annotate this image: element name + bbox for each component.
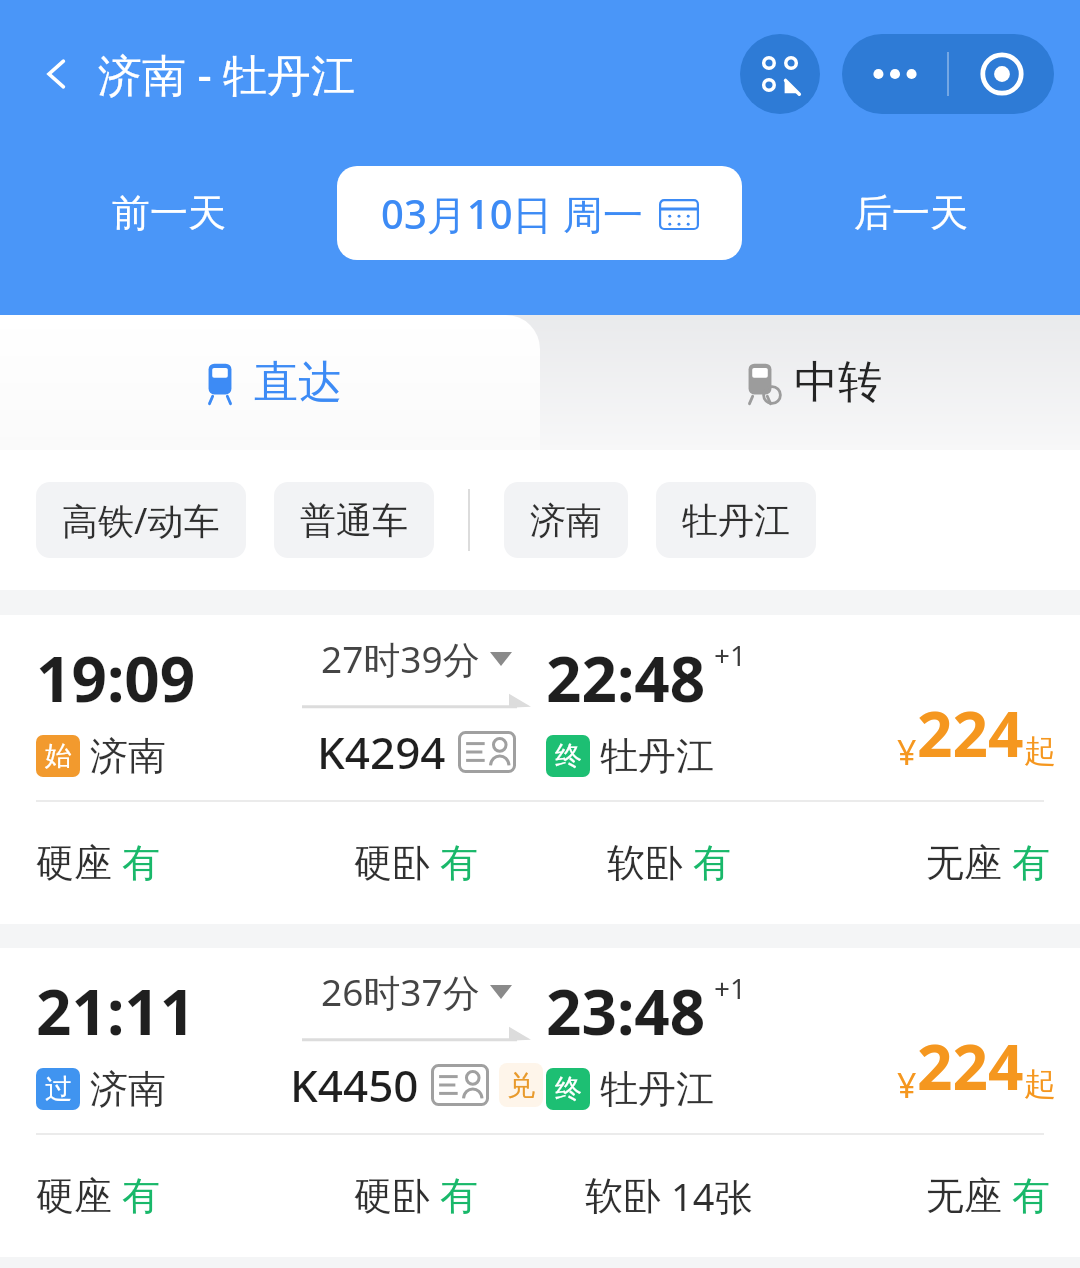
staticText: 前一天: [112, 189, 226, 237]
staticText: 牡丹江: [682, 498, 790, 543]
staticText: 硬座: [36, 1172, 112, 1220]
staticText: 无座: [926, 839, 1002, 887]
button[interactable]: 牡丹江: [656, 482, 816, 558]
staticText: 有: [1012, 839, 1050, 887]
button[interactable]: Target: [949, 34, 1054, 114]
staticText: 224: [917, 1024, 1024, 1108]
staticText: +1: [714, 636, 747, 674]
staticText: 始: [45, 739, 72, 773]
staticText: 牡丹江: [600, 1065, 714, 1113]
staticText: 终: [555, 739, 582, 773]
button[interactable]: 高铁/动车: [36, 482, 246, 558]
staticText: 软卧: [585, 1172, 661, 1220]
staticText: 济南: [90, 1065, 166, 1113]
button[interactable]: 后一天: [742, 148, 1080, 278]
staticText: 济南: [90, 732, 166, 780]
staticText: 有: [122, 839, 160, 887]
staticText: 有: [693, 839, 731, 887]
staticText: 有: [122, 1172, 160, 1220]
staticText: ¥: [897, 729, 917, 775]
staticText: 高铁/动车: [62, 496, 220, 545]
staticText: 普通车: [300, 498, 408, 543]
button[interactable]: Scan: [740, 34, 820, 114]
staticText: 27时39分: [321, 633, 480, 684]
staticText: 硬卧: [354, 839, 430, 887]
staticText: 过: [45, 1072, 72, 1106]
staticText: 硬卧: [354, 1172, 430, 1220]
button[interactable]: 03月10日 周一: [337, 166, 742, 260]
staticText: 济南: [530, 498, 602, 543]
staticText: 有: [440, 839, 478, 887]
staticText: 有: [1012, 1172, 1050, 1220]
staticText: 21:11: [36, 969, 196, 1053]
staticText: 有: [440, 1172, 478, 1220]
button[interactable]: 21:11: [0, 948, 1080, 1257]
button[interactable]: 普通车: [274, 482, 434, 558]
staticText: 无座: [926, 1172, 1002, 1220]
staticText: 23:48: [546, 969, 706, 1053]
staticText: 起: [1024, 731, 1056, 771]
staticText: 软卧: [607, 839, 683, 887]
button[interactable]: 19:09: [0, 615, 1080, 924]
staticText: 26时37分: [321, 966, 480, 1017]
staticText: 硬座: [36, 839, 112, 887]
button[interactable]: Back: [30, 47, 84, 101]
button[interactable]: 中转: [540, 315, 1080, 450]
staticText: 济南 - 牡丹江: [98, 44, 356, 104]
staticText: 22:48: [546, 636, 706, 720]
staticText: 19:09: [36, 636, 196, 720]
staticText: 起: [1024, 1064, 1056, 1104]
button[interactable]: More options: [842, 34, 947, 114]
staticText: K4450: [290, 1055, 419, 1115]
staticText: 直达: [254, 355, 342, 410]
button[interactable]: 直达: [0, 315, 540, 450]
button[interactable]: 济南: [504, 482, 628, 558]
staticText: 牡丹江: [600, 732, 714, 780]
staticText: K4294: [317, 722, 446, 782]
staticText: 兑: [507, 1068, 535, 1103]
staticText: +1: [714, 969, 747, 1007]
staticText: 后一天: [854, 189, 968, 237]
staticText: ¥: [897, 1062, 917, 1108]
button[interactable]: 前一天: [0, 148, 337, 278]
staticText: 224: [917, 691, 1024, 775]
staticText: 03月10日 周一: [381, 186, 643, 241]
staticText: 终: [555, 1072, 582, 1106]
staticText: 中转: [794, 355, 882, 410]
staticText: 14张: [671, 1170, 753, 1222]
